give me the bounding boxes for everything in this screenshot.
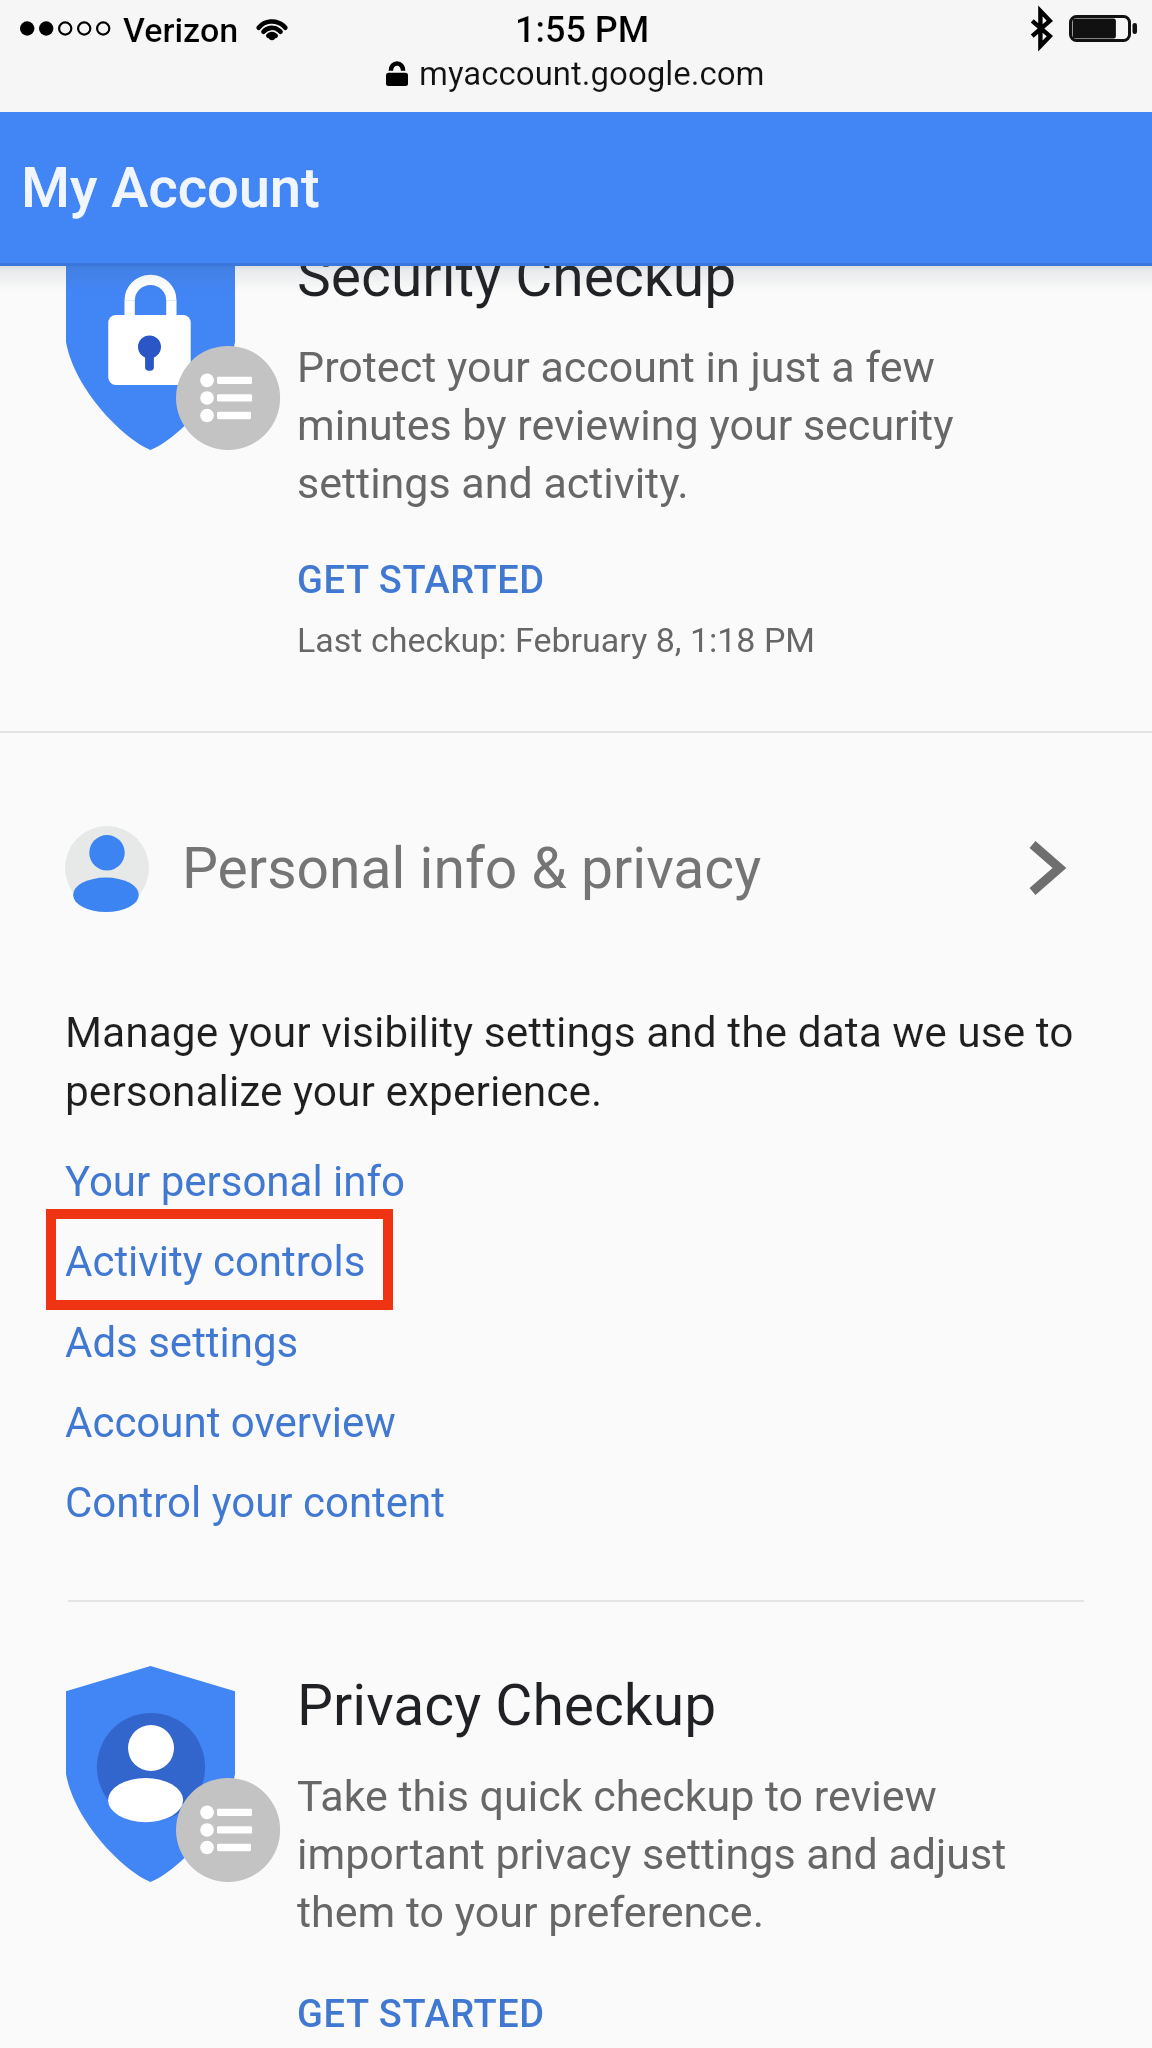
button[interactable]: Personal info & privacy <box>0 820 1152 916</box>
staticText: Last checkup: February 8, 1:18 PM <box>297 619 816 661</box>
staticText: GET STARTED <box>297 1989 545 2037</box>
staticText: Privacy Checkup <box>297 1670 717 1740</box>
button[interactable]: Account overview <box>0 1382 1152 1462</box>
button[interactable]: GET STARTED <box>297 555 545 603</box>
button[interactable]: Address bar <box>0 56 1152 112</box>
staticText: GET STARTED <box>297 555 545 603</box>
staticText: Protect your account in just a few minut… <box>297 336 1027 510</box>
other: Bluetooth <box>1031 11 1051 46</box>
other: Cellular signal <box>20 21 111 36</box>
button[interactable]: Your personal info <box>0 1141 1152 1221</box>
button[interactable]: Control your content <box>0 1462 1152 1542</box>
staticText: Personal info & privacy <box>182 835 762 902</box>
other: Battery <box>1069 15 1137 42</box>
staticText: myaccount.google.com <box>419 54 765 93</box>
other: Open <box>1028 840 1064 896</box>
button[interactable]: GET STARTED <box>297 1989 545 2037</box>
staticText: Ads settings <box>65 1316 299 1368</box>
button[interactable]: My Account <box>0 112 1152 265</box>
button[interactable]: Ads settings <box>0 1302 1152 1382</box>
staticText: My Account <box>21 155 320 221</box>
staticText: Your personal info <box>65 1155 405 1207</box>
staticText: Activity controls <box>65 1235 366 1287</box>
staticText: Security Checkup <box>297 241 737 311</box>
staticText: Verizon <box>123 10 239 50</box>
staticText: Manage your visibility settings and the … <box>65 1000 1125 1118</box>
staticText: Account overview <box>65 1396 396 1448</box>
staticText: 1:55 PM <box>515 9 650 51</box>
button[interactable]: Activity controls <box>0 1221 1152 1301</box>
staticText: Take this quick checkup to review import… <box>297 1765 1027 1939</box>
staticText: Control your content <box>65 1476 446 1528</box>
other: Wi-Fi <box>254 14 290 40</box>
